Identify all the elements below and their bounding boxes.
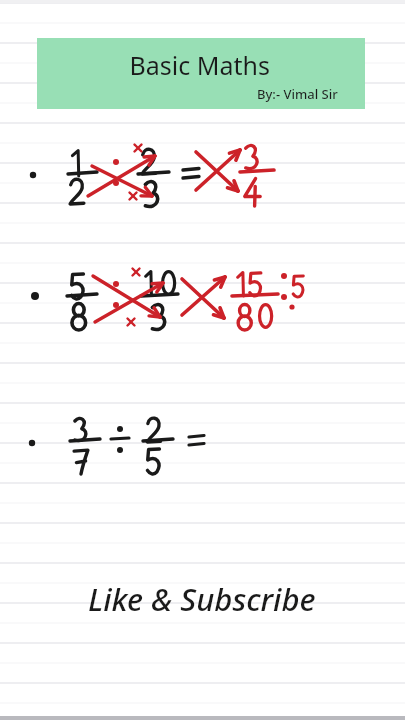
button[interactable]: Basic Maths notebook page bbox=[0, 0, 405, 720]
